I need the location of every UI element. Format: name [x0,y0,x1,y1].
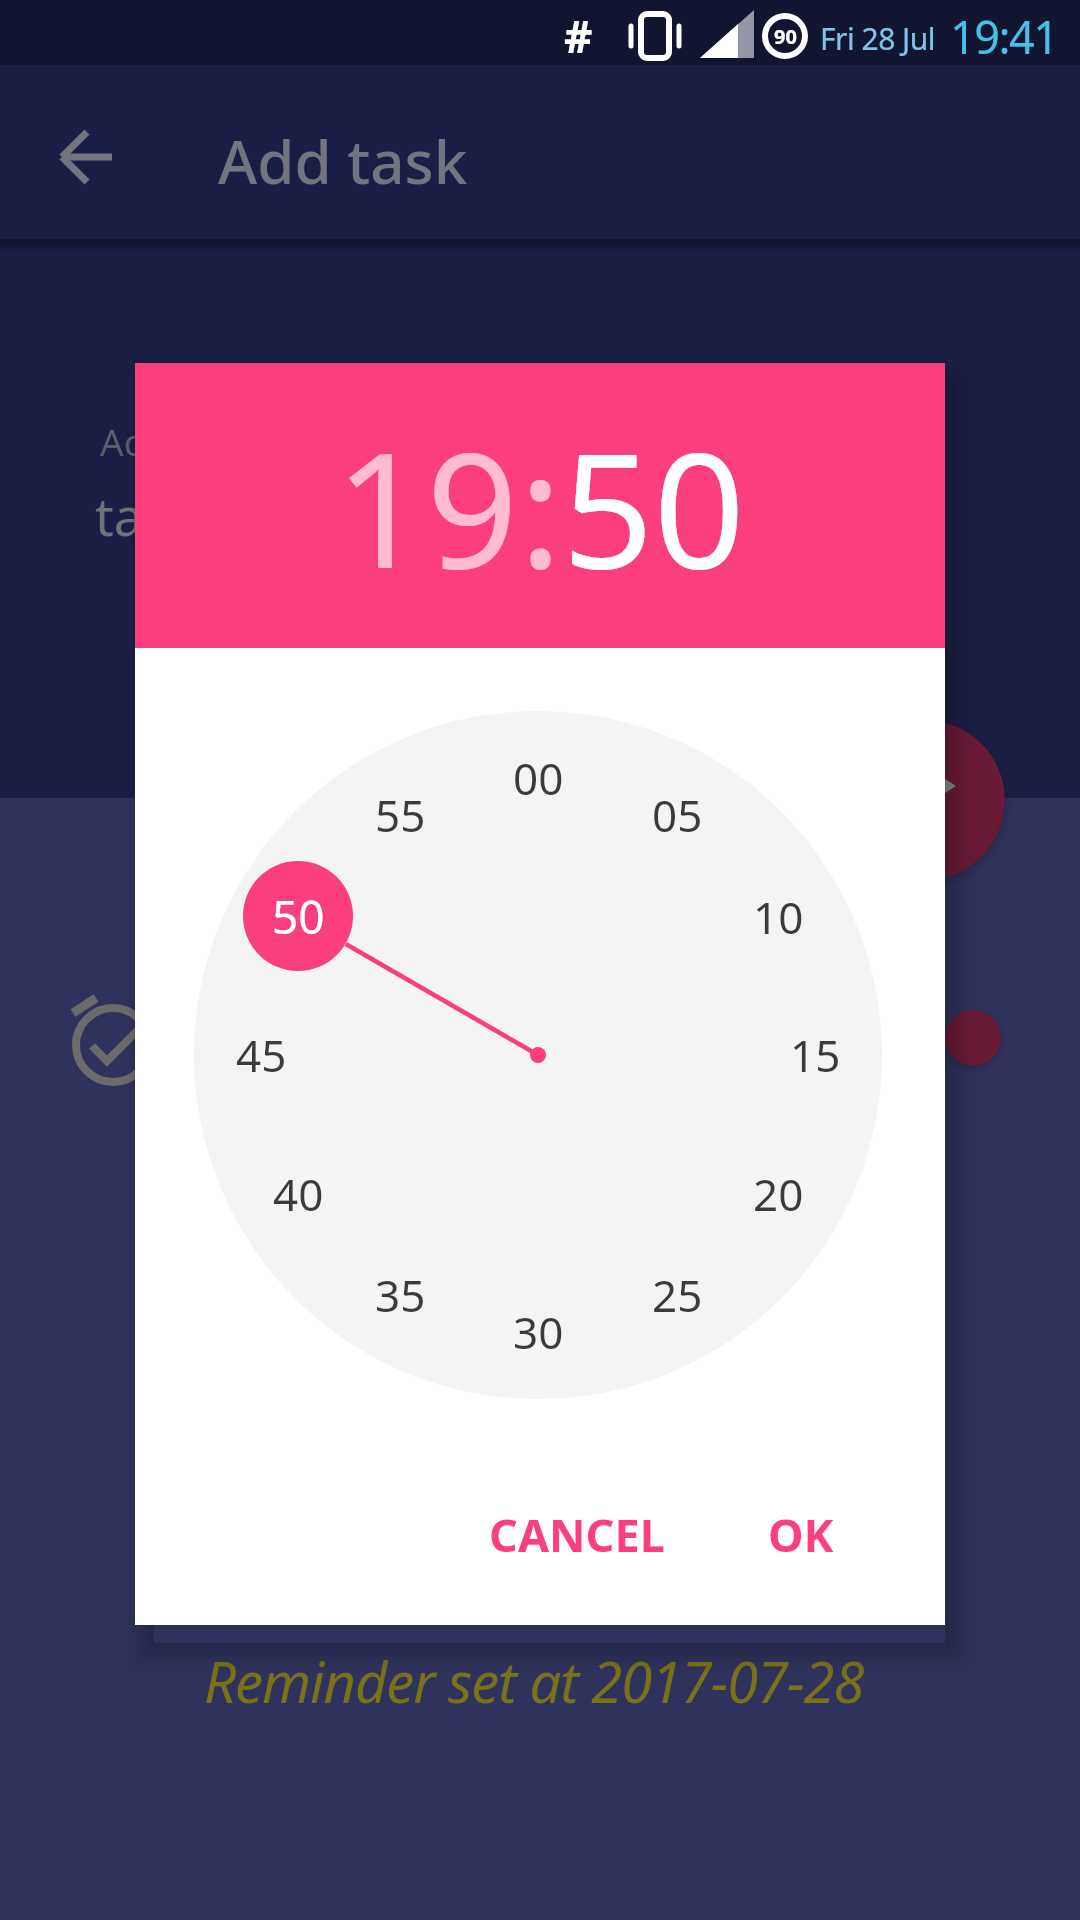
staticText: 55 [375,785,426,845]
staticText: CANCEL [489,1504,665,1565]
staticText: 90 [774,23,797,50]
button[interactable]: 50 [243,861,353,971]
staticText: 35 [375,1265,426,1325]
staticText: Reminder set at 2017-07-28 [204,1643,864,1719]
staticText: 19:41 [950,6,1058,67]
staticText: task [95,480,196,551]
staticText: Fri 28 Jul [820,18,936,59]
staticText: 19 [335,397,519,615]
staticText: 40 [273,1164,324,1224]
staticText: 50 [272,885,325,948]
staticText: 00 [513,748,564,808]
staticText: 10 [753,887,804,947]
button[interactable]: OK [731,1486,871,1582]
staticText: # [564,6,593,66]
staticText: Add task [218,120,468,194]
staticText: OK [768,1504,834,1565]
staticText: 30 [513,1302,564,1362]
button[interactable]: CANCEL [452,1486,702,1582]
staticText: 15 [790,1025,841,1085]
staticText: 05 [652,785,703,845]
button[interactable] [845,720,1005,880]
staticText: : [519,397,562,615]
button[interactable] [40,115,130,205]
staticText: 45 [236,1025,287,1085]
staticText: 20 [753,1164,804,1224]
staticText: 25 [652,1265,703,1325]
staticText: Add task for today? [100,416,435,466]
staticText: 50 [562,397,746,615]
